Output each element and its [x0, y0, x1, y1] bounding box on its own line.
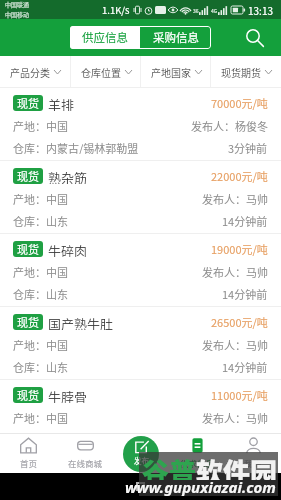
staticText: 1.1K/s	[102, 3, 130, 17]
staticText: 产品分类	[10, 65, 50, 79]
staticText: 供应信息	[82, 29, 128, 46]
button[interactable]: 产地国家	[141, 56, 211, 88]
staticText: 我的	[244, 457, 262, 469]
staticText: 19000元/吨	[211, 241, 268, 257]
staticText: 产地国家	[151, 65, 191, 79]
staticText: 在线商城	[68, 457, 103, 469]
staticText: 现货	[17, 95, 39, 111]
staticText: 仓库位置	[81, 65, 121, 79]
staticText: 11000元/吨	[211, 387, 268, 403]
staticText: 牛脖骨	[48, 387, 88, 403]
staticText: www.gupuxiazai.com	[125, 477, 276, 497]
staticText: 产地：中国	[13, 337, 68, 351]
button[interactable]: 现货	[0, 161, 281, 234]
staticText: 22000元/吨	[211, 168, 268, 184]
staticText: 熟杂筋	[48, 168, 88, 184]
staticText: 产地：中国	[13, 191, 68, 205]
staticText: 现货	[17, 387, 39, 403]
staticText: 采购信息	[153, 29, 199, 46]
staticText: 14分钟前	[222, 286, 268, 300]
staticText: 仓库：山东	[13, 359, 68, 373]
staticText: 仓库：山东	[13, 286, 68, 300]
staticText: 26500元/吨	[211, 314, 268, 330]
staticText: 首页	[20, 457, 38, 469]
staticText: 现货	[17, 168, 39, 184]
button[interactable]: 产品分类	[0, 56, 71, 88]
button[interactable]: 现货期货	[211, 56, 281, 88]
staticText: 发布人：马帅	[202, 337, 268, 351]
staticText: 发布人：马帅	[202, 410, 268, 424]
button[interactable]: 现货	[0, 88, 281, 161]
staticText: 产地：中国	[13, 410, 68, 424]
staticText: 谷普	[142, 452, 196, 480]
staticText: 36	[193, 7, 199, 14]
staticText: 发布人：马帅	[202, 191, 268, 205]
staticText: 发布	[134, 455, 149, 466]
staticText: 仓库：内蒙古/锡林郭勒盟	[13, 140, 139, 154]
button[interactable]: 供应信息	[70, 26, 140, 49]
staticText: 现货期货	[221, 65, 261, 79]
staticText: 仓库：山东	[13, 213, 68, 227]
button[interactable]: 现货	[0, 307, 281, 380]
staticText: 中国移动	[5, 10, 30, 19]
staticText: 3分钟前	[228, 140, 268, 154]
button[interactable]: 现货	[0, 234, 281, 307]
staticText: 现货	[17, 241, 39, 257]
staticText: 中国联通	[5, 0, 30, 9]
staticText: 70000元/吨	[211, 95, 268, 111]
staticText: 13:13	[248, 3, 273, 17]
staticText: 现货	[17, 314, 39, 330]
button[interactable]: 发布	[123, 436, 159, 472]
button[interactable]: 在线商城	[57, 433, 113, 473]
staticText: 供求信息	[180, 457, 215, 469]
button[interactable]: 现货	[0, 380, 281, 433]
staticText: 国产熟牛肚	[48, 314, 114, 330]
staticText: 羊排	[48, 95, 75, 111]
button[interactable]: Recents	[136, 482, 145, 491]
button[interactable]: 仓库位置	[71, 56, 141, 88]
button[interactable]: 首页	[0, 433, 57, 473]
button[interactable]: 供求信息	[169, 433, 225, 473]
button[interactable]: Search	[242, 25, 268, 51]
staticText: 14分钟前	[222, 359, 268, 373]
staticText: 14分钟前	[222, 213, 268, 227]
button[interactable]: 采购信息	[140, 26, 211, 49]
staticText: 牛碎肉	[48, 241, 88, 257]
staticText: 发布人：马帅	[202, 264, 268, 278]
staticText: 软件园	[196, 452, 277, 480]
staticText: 产地：中国	[13, 264, 68, 278]
staticText: 发布人：杨俊冬	[191, 118, 268, 132]
staticText: 产地：中国	[13, 118, 68, 132]
staticText: 4G	[211, 7, 218, 14]
button[interactable]: 我的	[225, 433, 281, 473]
